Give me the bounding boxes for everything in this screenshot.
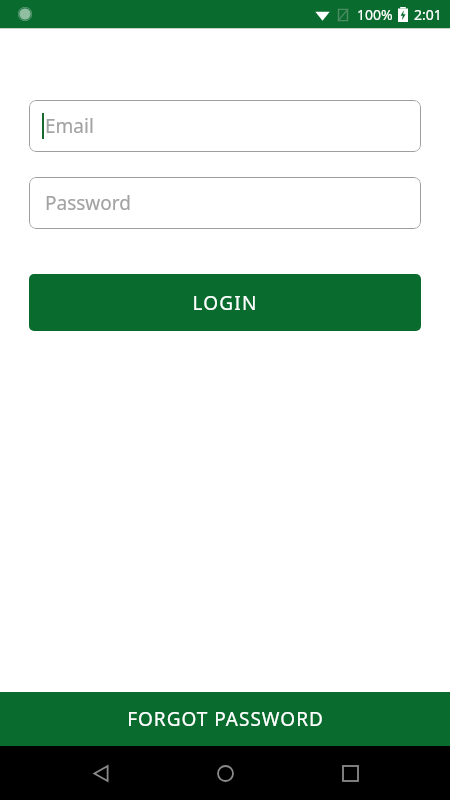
- button[interactable]: Back: [77, 749, 125, 797]
- staticText: LOGIN: [192, 290, 258, 316]
- staticText: Password: [45, 190, 131, 216]
- button[interactable]: LOGIN: [29, 274, 421, 331]
- staticText: 100%: [357, 5, 393, 24]
- staticText: Email: [45, 113, 94, 139]
- button[interactable]: FORGOT PASSWORD: [0, 692, 450, 746]
- staticText: 2:01: [414, 5, 442, 24]
- button[interactable]: Password: [29, 177, 421, 229]
- button[interactable]: Email: [29, 100, 421, 152]
- button[interactable]: Home: [201, 749, 249, 797]
- staticText: FORGOT PASSWORD: [127, 706, 324, 732]
- button[interactable]: Recent apps: [326, 749, 374, 797]
